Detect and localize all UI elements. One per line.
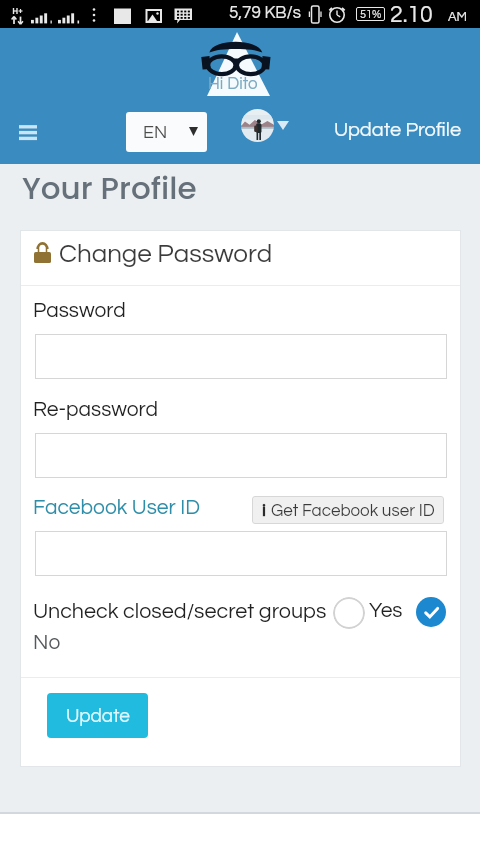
staticText: Yes <box>369 600 403 622</box>
button[interactable] <box>35 433 447 478</box>
staticText: 2.10 <box>390 3 433 27</box>
button[interactable]: EN <box>126 112 207 152</box>
button[interactable]: No selected <box>416 597 446 627</box>
button[interactable]: Account menu <box>241 109 289 142</box>
staticText: Update <box>66 706 130 726</box>
staticText: No <box>33 632 61 654</box>
button[interactable]: Update Profile <box>328 108 468 152</box>
staticText: Hi Dito <box>208 75 258 93</box>
button[interactable] <box>35 334 447 379</box>
staticText: Your Profile <box>22 166 197 209</box>
staticText: i <box>262 500 266 521</box>
staticText: Change Password <box>59 241 273 268</box>
button[interactable]: i <box>252 496 444 524</box>
staticText: 51% <box>360 9 382 20</box>
staticText: Password <box>33 300 126 322</box>
staticText: EN <box>143 123 168 142</box>
staticText: AM <box>448 10 468 23</box>
button[interactable]: Menu <box>8 110 48 154</box>
button[interactable] <box>35 531 447 576</box>
staticText: Get Facebook user ID <box>271 502 435 520</box>
staticText: Re-password <box>33 399 159 421</box>
staticText: 5,79 KB/s <box>229 4 301 22</box>
button[interactable]: Yes <box>333 597 365 629</box>
button[interactable]: Update <box>47 693 148 738</box>
staticText: Update Profile <box>334 120 462 141</box>
staticText: Uncheck closed/secret groups <box>33 600 327 622</box>
staticText: Facebook User ID <box>33 497 200 519</box>
